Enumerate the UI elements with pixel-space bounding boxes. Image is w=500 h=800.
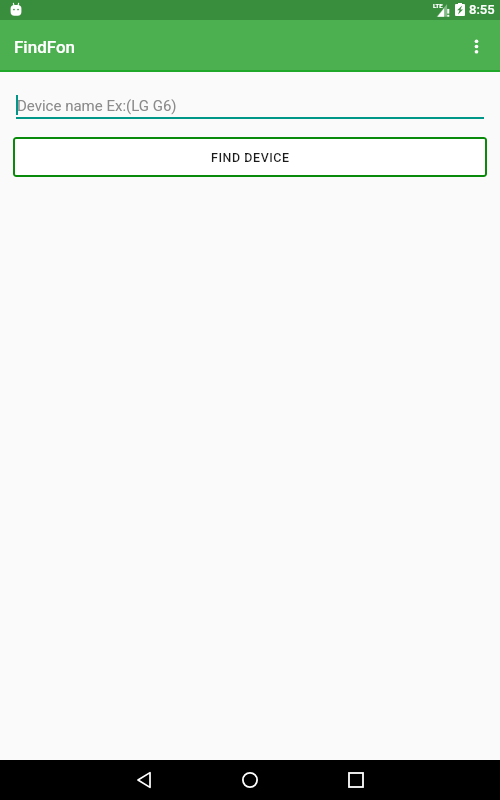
button[interactable]: Back <box>120 760 168 800</box>
staticText: FIND DEVICE <box>211 150 290 165</box>
button[interactable]: Home <box>226 760 274 800</box>
staticText: FindFon <box>14 37 76 57</box>
staticText: Device name Ex:(LG G6) <box>17 97 177 115</box>
button[interactable]: More options <box>452 22 500 70</box>
button[interactable]: Device name Ex:(LG G6) <box>16 72 484 118</box>
staticText: LTE <box>433 2 443 9</box>
button[interactable]: FIND DEVICE <box>13 137 487 177</box>
staticText: 8:55 <box>469 2 495 17</box>
button[interactable]: Recent apps <box>332 760 380 800</box>
